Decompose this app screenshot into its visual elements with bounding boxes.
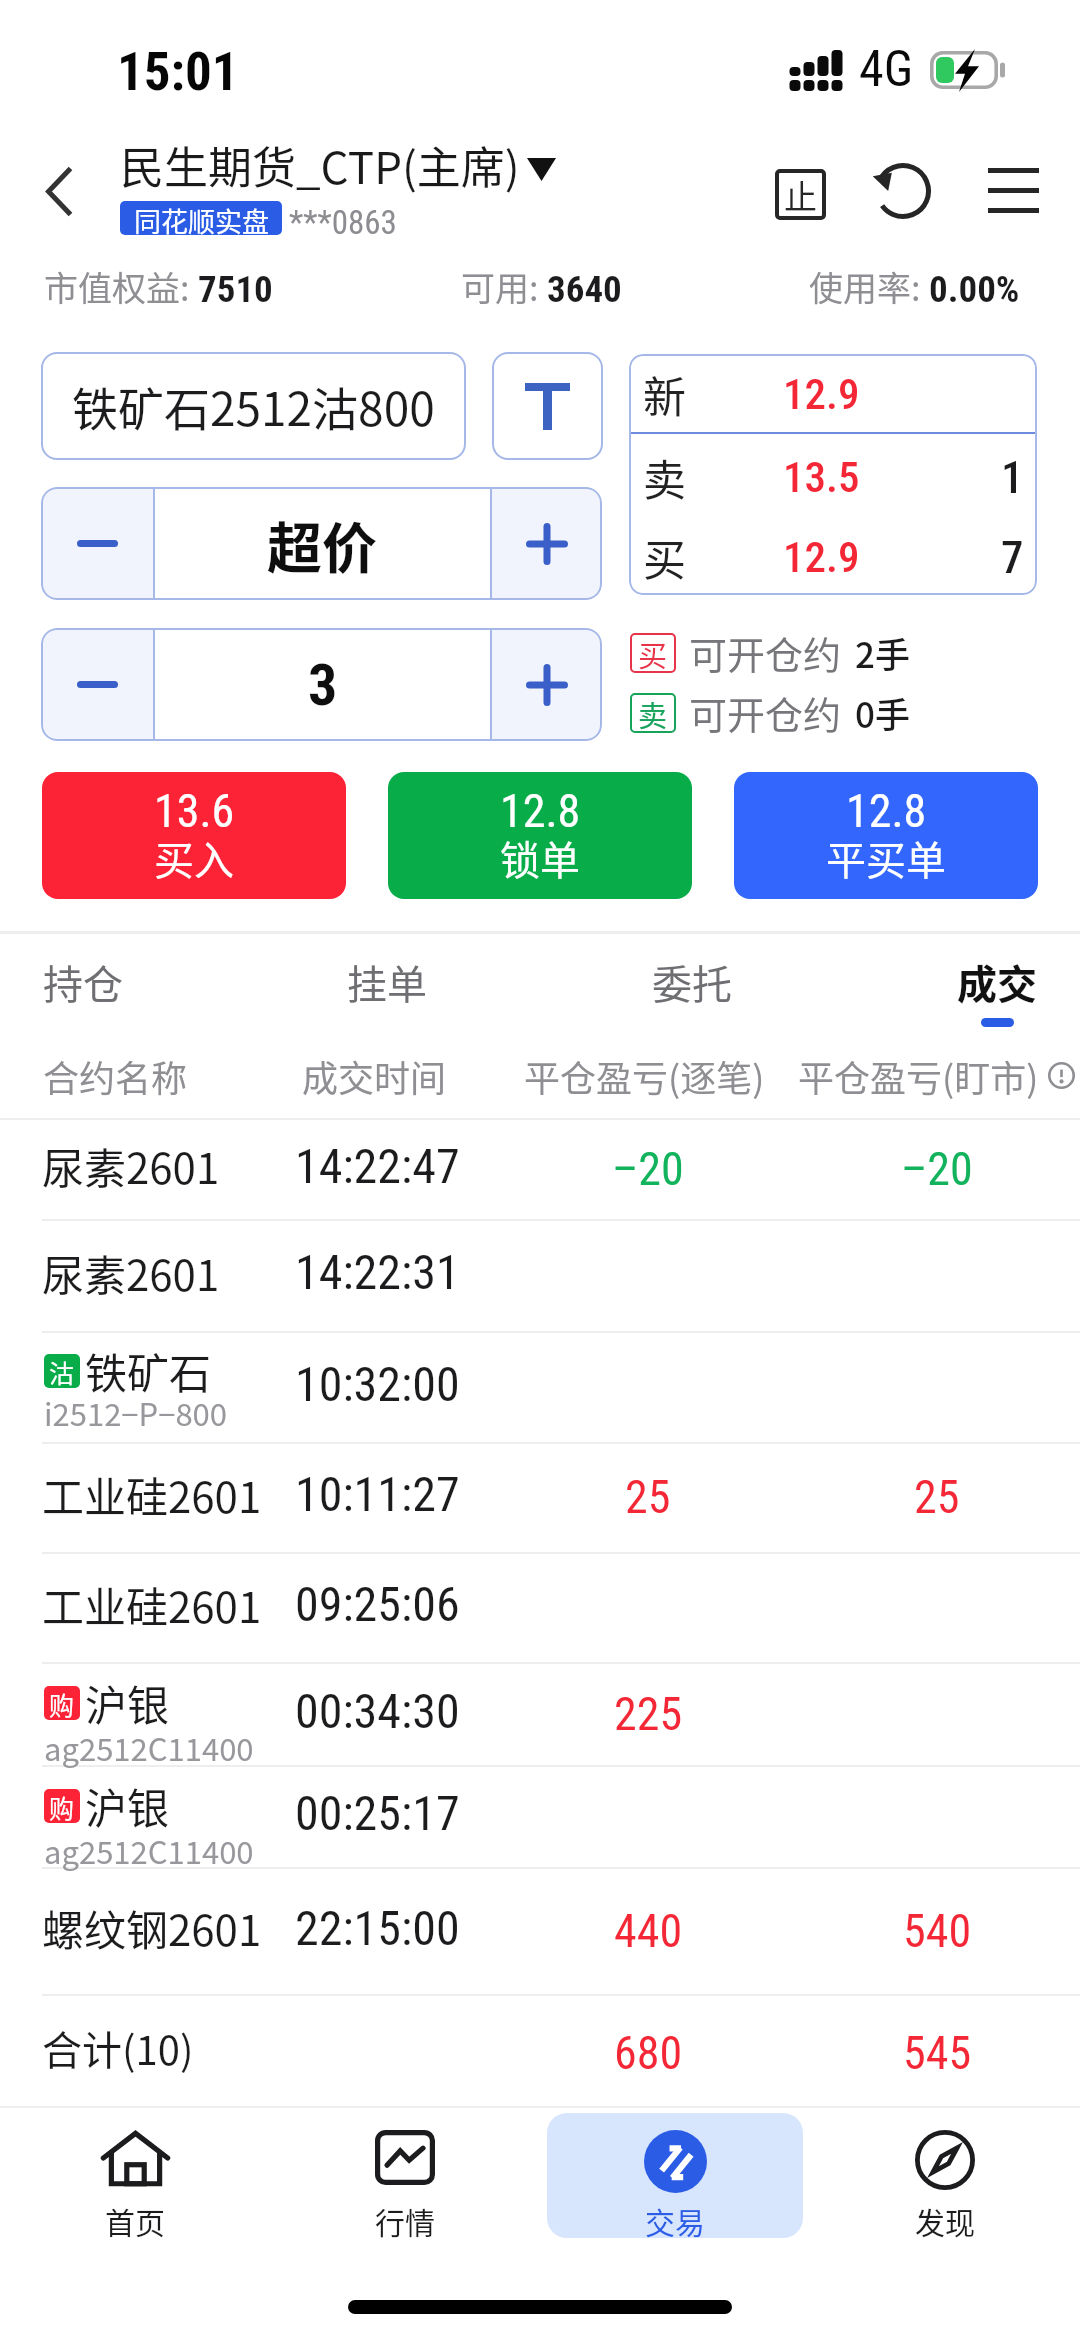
button[interactable]: 购 [0, 1765, 1080, 1867]
button[interactable]: Refresh [854, 150, 942, 238]
staticText: 09:25:06 [295, 1576, 460, 1632]
staticText: 尿素2601 [42, 1135, 220, 1196]
staticText: 4G [859, 40, 914, 99]
staticText: 锁单 [500, 829, 580, 887]
staticText: 超价 [267, 504, 378, 584]
staticText: 12.8 [500, 784, 581, 838]
staticText: 成交时间 [302, 1050, 447, 1102]
staticText: 合约名称 [43, 1050, 188, 1102]
button[interactable]: 铁矿石2512沽800 [41, 352, 466, 460]
button[interactable]: 行情 [277, 2113, 533, 2238]
staticText: 可开仓约 [689, 685, 842, 740]
button[interactable]: 持仓 [0, 934, 193, 1030]
staticText: 00:25:17 [295, 1785, 460, 1841]
staticText: 0手 [855, 687, 910, 738]
staticText: 440 [614, 1904, 683, 1958]
button[interactable]: 尿素2601 [0, 1219, 1080, 1331]
staticText: 22:15:00 [295, 1900, 460, 1956]
staticText: 螺纹钢2601 [42, 1897, 262, 1958]
staticText: 挂单 [347, 953, 427, 1011]
staticText: 13.6 [154, 784, 235, 838]
button[interactable]: Decrease [41, 487, 153, 600]
staticText: 卖 [643, 446, 686, 508]
staticText: ***0863 [289, 203, 397, 242]
staticText: 民生期货_CTP(主席) [120, 133, 520, 197]
staticText: 市值权益: [44, 262, 198, 311]
staticText: 同花顺实盘 [134, 201, 269, 235]
staticText: 合计(10) [42, 2019, 194, 2077]
staticText: 购 [49, 1789, 75, 1823]
button[interactable]: 沽 [0, 1331, 1080, 1442]
staticText: 成交 [957, 953, 1037, 1011]
staticText: –20 [901, 1142, 973, 1196]
staticText: 0.00% [929, 268, 1020, 311]
staticText: 3 [308, 651, 338, 719]
staticText: 工业硅2601 [42, 1464, 262, 1525]
staticText: ag2512C11400 [44, 1725, 254, 1770]
button[interactable]: Menu [964, 150, 1052, 238]
staticText: 540 [903, 1904, 972, 1958]
button[interactable]: 挂单 [277, 934, 497, 1030]
staticText: 工业硅2601 [42, 1574, 262, 1635]
staticText: –20 [612, 1142, 684, 1196]
button[interactable]: 发现 [817, 2113, 1073, 2238]
staticText: 止 [784, 171, 817, 219]
staticText: 680 [614, 2026, 683, 2080]
button[interactable]: Stop order [756, 150, 844, 238]
staticText: 225 [614, 1687, 683, 1741]
staticText: 14:22:31 [295, 1244, 460, 1300]
staticText: 委托 [652, 953, 732, 1011]
staticText: 平买单 [826, 829, 946, 887]
staticText: i2512−P−800 [44, 1390, 227, 1435]
button[interactable]: 工业硅2601 [0, 1552, 1080, 1662]
button[interactable]: 购 [0, 1662, 1080, 1765]
staticText: 新 [643, 363, 686, 425]
staticText: 平仓盈亏(盯市) [798, 1050, 1039, 1102]
button[interactable]: 12.8 [734, 772, 1038, 899]
staticText: 1 [1001, 451, 1024, 504]
button[interactable]: Increase [492, 487, 602, 600]
staticText: 12.8 [846, 784, 927, 838]
button[interactable]: Text order [492, 352, 603, 460]
staticText: 行情 [375, 2199, 435, 2242]
button[interactable]: 工业硅2601 [0, 1442, 1080, 1552]
staticText: 买入 [154, 829, 234, 887]
staticText: 使用率: [809, 262, 929, 311]
button[interactable]: 12.8 [388, 772, 692, 899]
staticText: 25 [625, 1470, 671, 1524]
staticText: 10:32:00 [295, 1356, 460, 1412]
button[interactable]: 成交 [887, 934, 1080, 1030]
staticText: 沪银 [85, 1775, 170, 1836]
button[interactable]: Increase [492, 628, 602, 741]
staticText: 沽 [49, 1354, 75, 1388]
staticText: 7510 [198, 268, 273, 311]
button[interactable]: Decrease [41, 628, 153, 741]
staticText: 持仓 [43, 953, 123, 1011]
staticText: 25 [914, 1470, 960, 1524]
button[interactable]: 首页 [7, 2113, 263, 2238]
button[interactable]: 委托 [582, 934, 802, 1030]
staticText: 10:11:27 [295, 1466, 460, 1522]
staticText: 3640 [547, 268, 622, 311]
staticText: 平仓盈亏(逐笔) [524, 1050, 765, 1102]
staticText: 2手 [855, 627, 910, 678]
button[interactable]: 尿素2601 [0, 1118, 1080, 1219]
staticText: 7 [1001, 531, 1024, 584]
button[interactable]: 交易 [547, 2113, 803, 2238]
staticText: 545 [903, 2026, 972, 2080]
staticText: ag2512C11400 [44, 1828, 254, 1873]
staticText: 交易 [645, 2199, 705, 2242]
staticText: 沪银 [85, 1672, 170, 1733]
button[interactable]: 螺纹钢2601 [0, 1867, 1080, 1994]
button[interactable]: 13.6 [42, 772, 346, 899]
staticText: 发现 [915, 2199, 975, 2242]
staticText: 15:01 [117, 41, 239, 103]
staticText: 00:34:30 [295, 1683, 460, 1739]
staticText: 14:22:47 [295, 1138, 460, 1194]
staticText: 12.9 [783, 532, 860, 582]
staticText: 可用: [461, 262, 547, 311]
staticText: 13.5 [783, 452, 860, 502]
staticText: 买 [638, 633, 668, 673]
button[interactable]: Back [15, 147, 103, 235]
staticText: 12.9 [783, 369, 860, 419]
